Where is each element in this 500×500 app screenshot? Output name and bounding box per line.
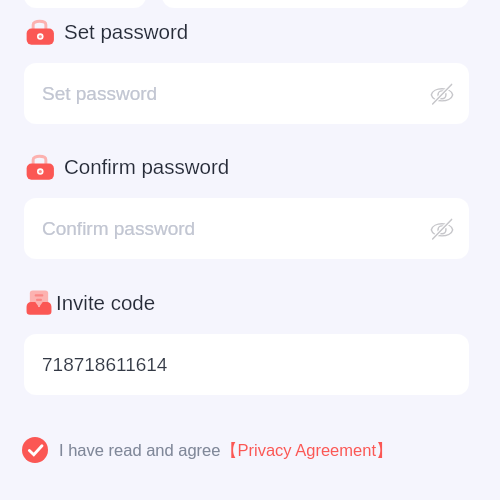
button[interactable]: Set password xyxy=(24,63,469,124)
button[interactable]: 【Privacy Agreement】 xyxy=(221,440,393,461)
staticText: Set password xyxy=(64,20,189,43)
button[interactable]: Confirm password xyxy=(24,198,469,259)
staticText: Confirm password xyxy=(64,155,230,178)
button[interactable]: I have read and agree xyxy=(59,441,221,459)
button[interactable]: Show password xyxy=(423,210,461,248)
staticText: Confirm password xyxy=(42,218,423,239)
button[interactable]: Agree to privacy policy xyxy=(22,437,48,463)
staticText: 718718611614 xyxy=(42,354,461,375)
button[interactable]: Show password xyxy=(423,75,461,113)
staticText: Set password xyxy=(42,83,423,104)
staticText: Invite code xyxy=(56,291,156,314)
button[interactable]: 718718611614 xyxy=(24,334,469,395)
